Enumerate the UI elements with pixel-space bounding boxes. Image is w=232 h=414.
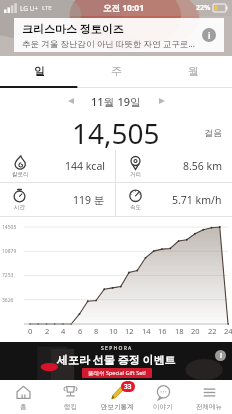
staticText: 0 <box>28 326 33 336</box>
staticText: 12 <box>125 326 134 336</box>
staticText: 144 kcal <box>65 159 105 173</box>
staticText: 추운 겨울 장난감이 아닌 따뜻한 자연 교구로… <box>22 38 195 50</box>
button[interactable]: 33 <box>94 380 140 414</box>
button[interactable]: 광고 정보 <box>202 28 216 42</box>
staticText: 10879 <box>2 248 17 255</box>
staticText: 18 <box>175 326 184 336</box>
staticText: 10 <box>109 326 118 336</box>
staticText: 크리스마스 정토이즈 <box>22 21 124 36</box>
staticText: 이야기 <box>153 403 173 411</box>
staticText: 거리 <box>130 171 141 178</box>
button[interactable]: 시간 <box>0 183 115 216</box>
button[interactable]: 다음 날짜 <box>152 91 172 111</box>
staticText: i <box>208 30 211 41</box>
button[interactable]: S E P H O R A <box>0 342 232 380</box>
staticText: 16 <box>158 326 167 336</box>
staticText: 만보기통계 <box>101 403 134 411</box>
staticText: S E P H O R A <box>101 345 132 352</box>
staticText: 20 <box>191 326 200 336</box>
button[interactable]: 랭킹 <box>47 380 94 414</box>
staticText: 2 <box>45 326 50 336</box>
staticText: 8 <box>94 326 99 336</box>
button[interactable]: 이야기 <box>140 380 186 414</box>
staticText: 일 <box>34 64 45 78</box>
button[interactable]: 주 <box>78 56 155 86</box>
staticText: 33 <box>124 382 132 391</box>
staticText: 전체메뉴 <box>196 403 222 411</box>
staticText: 걸음 <box>204 127 222 138</box>
staticText: 6 <box>78 326 83 336</box>
staticText: 14505 <box>2 224 17 231</box>
button[interactable]: 크리스마스 정토이즈 <box>14 18 224 52</box>
staticText: 14,505 <box>72 114 160 150</box>
button[interactable]: 이전 날짜 <box>61 91 81 111</box>
staticText: 3626 <box>2 297 14 304</box>
button[interactable]: 전체메뉴 <box>186 380 232 414</box>
staticText: 119 분 <box>73 193 105 207</box>
staticText: 14 <box>142 326 151 336</box>
button[interactable]: 거리 <box>116 150 232 182</box>
button[interactable]: 광고 정보 <box>215 350 226 361</box>
button[interactable]: 일 <box>0 56 78 86</box>
staticText: 5.71 km/h <box>172 193 222 207</box>
staticText: 4 <box>61 326 66 336</box>
staticText: 월 <box>188 64 199 78</box>
staticText: i <box>220 351 222 360</box>
staticText: 7253 <box>2 272 14 279</box>
staticText: 24 <box>224 326 232 336</box>
staticText: 세포라 선물 증정 이벤트 <box>57 352 176 367</box>
button[interactable]: 월 <box>155 56 232 86</box>
staticText: 시간 <box>14 204 25 211</box>
button[interactable]: 속도 <box>116 183 232 216</box>
staticText: 22 <box>208 326 217 336</box>
button[interactable]: 홈 <box>0 380 47 414</box>
staticText: 칼로리 <box>12 171 29 178</box>
staticText: 속도 <box>130 204 141 211</box>
staticText: LG U+ <box>20 4 39 13</box>
button[interactable]: 칼로리 <box>0 150 115 182</box>
staticText: 오전 10:01 <box>103 2 145 14</box>
staticText: 플래쉬 Special Gift Set! <box>88 369 146 377</box>
staticText: 8.56 km <box>183 159 222 173</box>
staticText: 랭킹 <box>64 403 77 411</box>
staticText: 11월 19일 <box>91 94 142 109</box>
staticText: 홈 <box>20 403 27 411</box>
staticText: LTE <box>42 4 52 12</box>
staticText: 주 <box>111 64 122 78</box>
staticText: 22% <box>196 3 211 13</box>
